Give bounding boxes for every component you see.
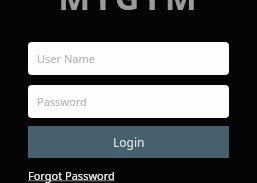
button[interactable]: Password bbox=[28, 85, 229, 118]
staticText: MYGYM bbox=[58, 0, 199, 20]
staticText: Login bbox=[113, 134, 145, 150]
staticText: Password bbox=[37, 94, 87, 109]
staticText: User Name bbox=[37, 51, 95, 66]
staticText: Forgot Password bbox=[28, 168, 115, 183]
button[interactable]: User Name bbox=[28, 42, 229, 75]
button[interactable]: Login bbox=[28, 126, 229, 158]
button[interactable]: Forgot Password bbox=[28, 167, 115, 183]
